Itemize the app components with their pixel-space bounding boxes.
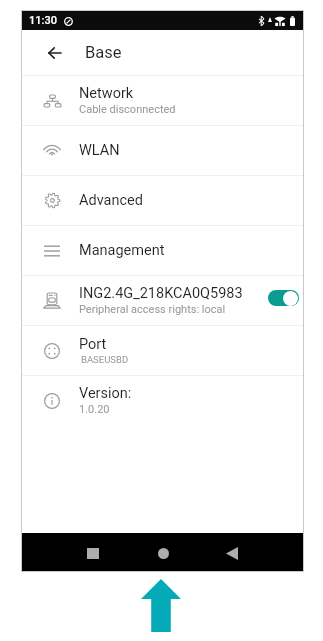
staticText: Cable disconnected: [79, 103, 176, 116]
button[interactable]: Home: [143, 533, 183, 571]
staticText: Network: [79, 85, 134, 102]
staticText: 1.0.20: [79, 403, 110, 416]
button[interactable]: Recent apps: [73, 533, 113, 571]
button[interactable]: Network: [22, 76, 303, 125]
button[interactable]: Port: [22, 326, 303, 375]
staticText: ING2.4G_218KCA0Q5983: [79, 285, 243, 302]
staticText: Advanced: [79, 192, 143, 209]
staticText: WLAN: [79, 142, 120, 159]
staticText: BASEUSBD: [81, 354, 129, 365]
button[interactable]: WLAN: [22, 126, 303, 175]
staticText: Management: [79, 242, 165, 259]
button[interactable]: Advanced: [22, 176, 303, 225]
button[interactable]: Back: [212, 533, 252, 571]
button[interactable]: Peripheral access toggle: [268, 290, 299, 306]
staticText: Peripheral access rights: local: [79, 303, 226, 316]
staticText: Base: [85, 43, 122, 62]
button[interactable]: Back: [40, 30, 68, 75]
button[interactable]: ING2.4G_218KCA0Q5983: [22, 276, 303, 325]
staticText: Version:: [79, 385, 132, 402]
button[interactable]: Management: [22, 226, 303, 275]
staticText: Port: [79, 336, 107, 353]
staticText: 11:30: [29, 14, 57, 27]
button[interactable]: Version:: [22, 376, 303, 425]
